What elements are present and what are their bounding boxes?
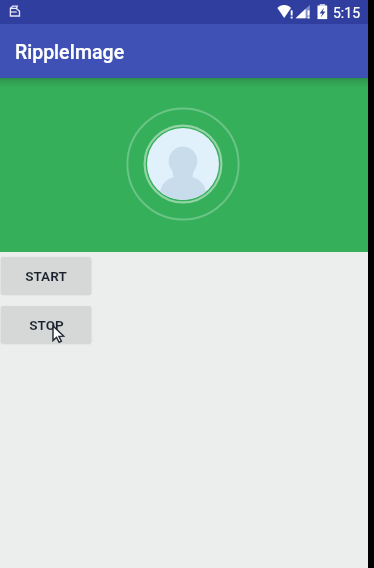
staticText: RippleImage	[15, 41, 125, 64]
button[interactable]: STOP	[1, 306, 91, 343]
button[interactable]: START	[1, 257, 91, 294]
staticText: 5:15	[333, 5, 360, 21]
staticText: STOP	[29, 317, 64, 333]
staticText: START	[25, 268, 67, 284]
